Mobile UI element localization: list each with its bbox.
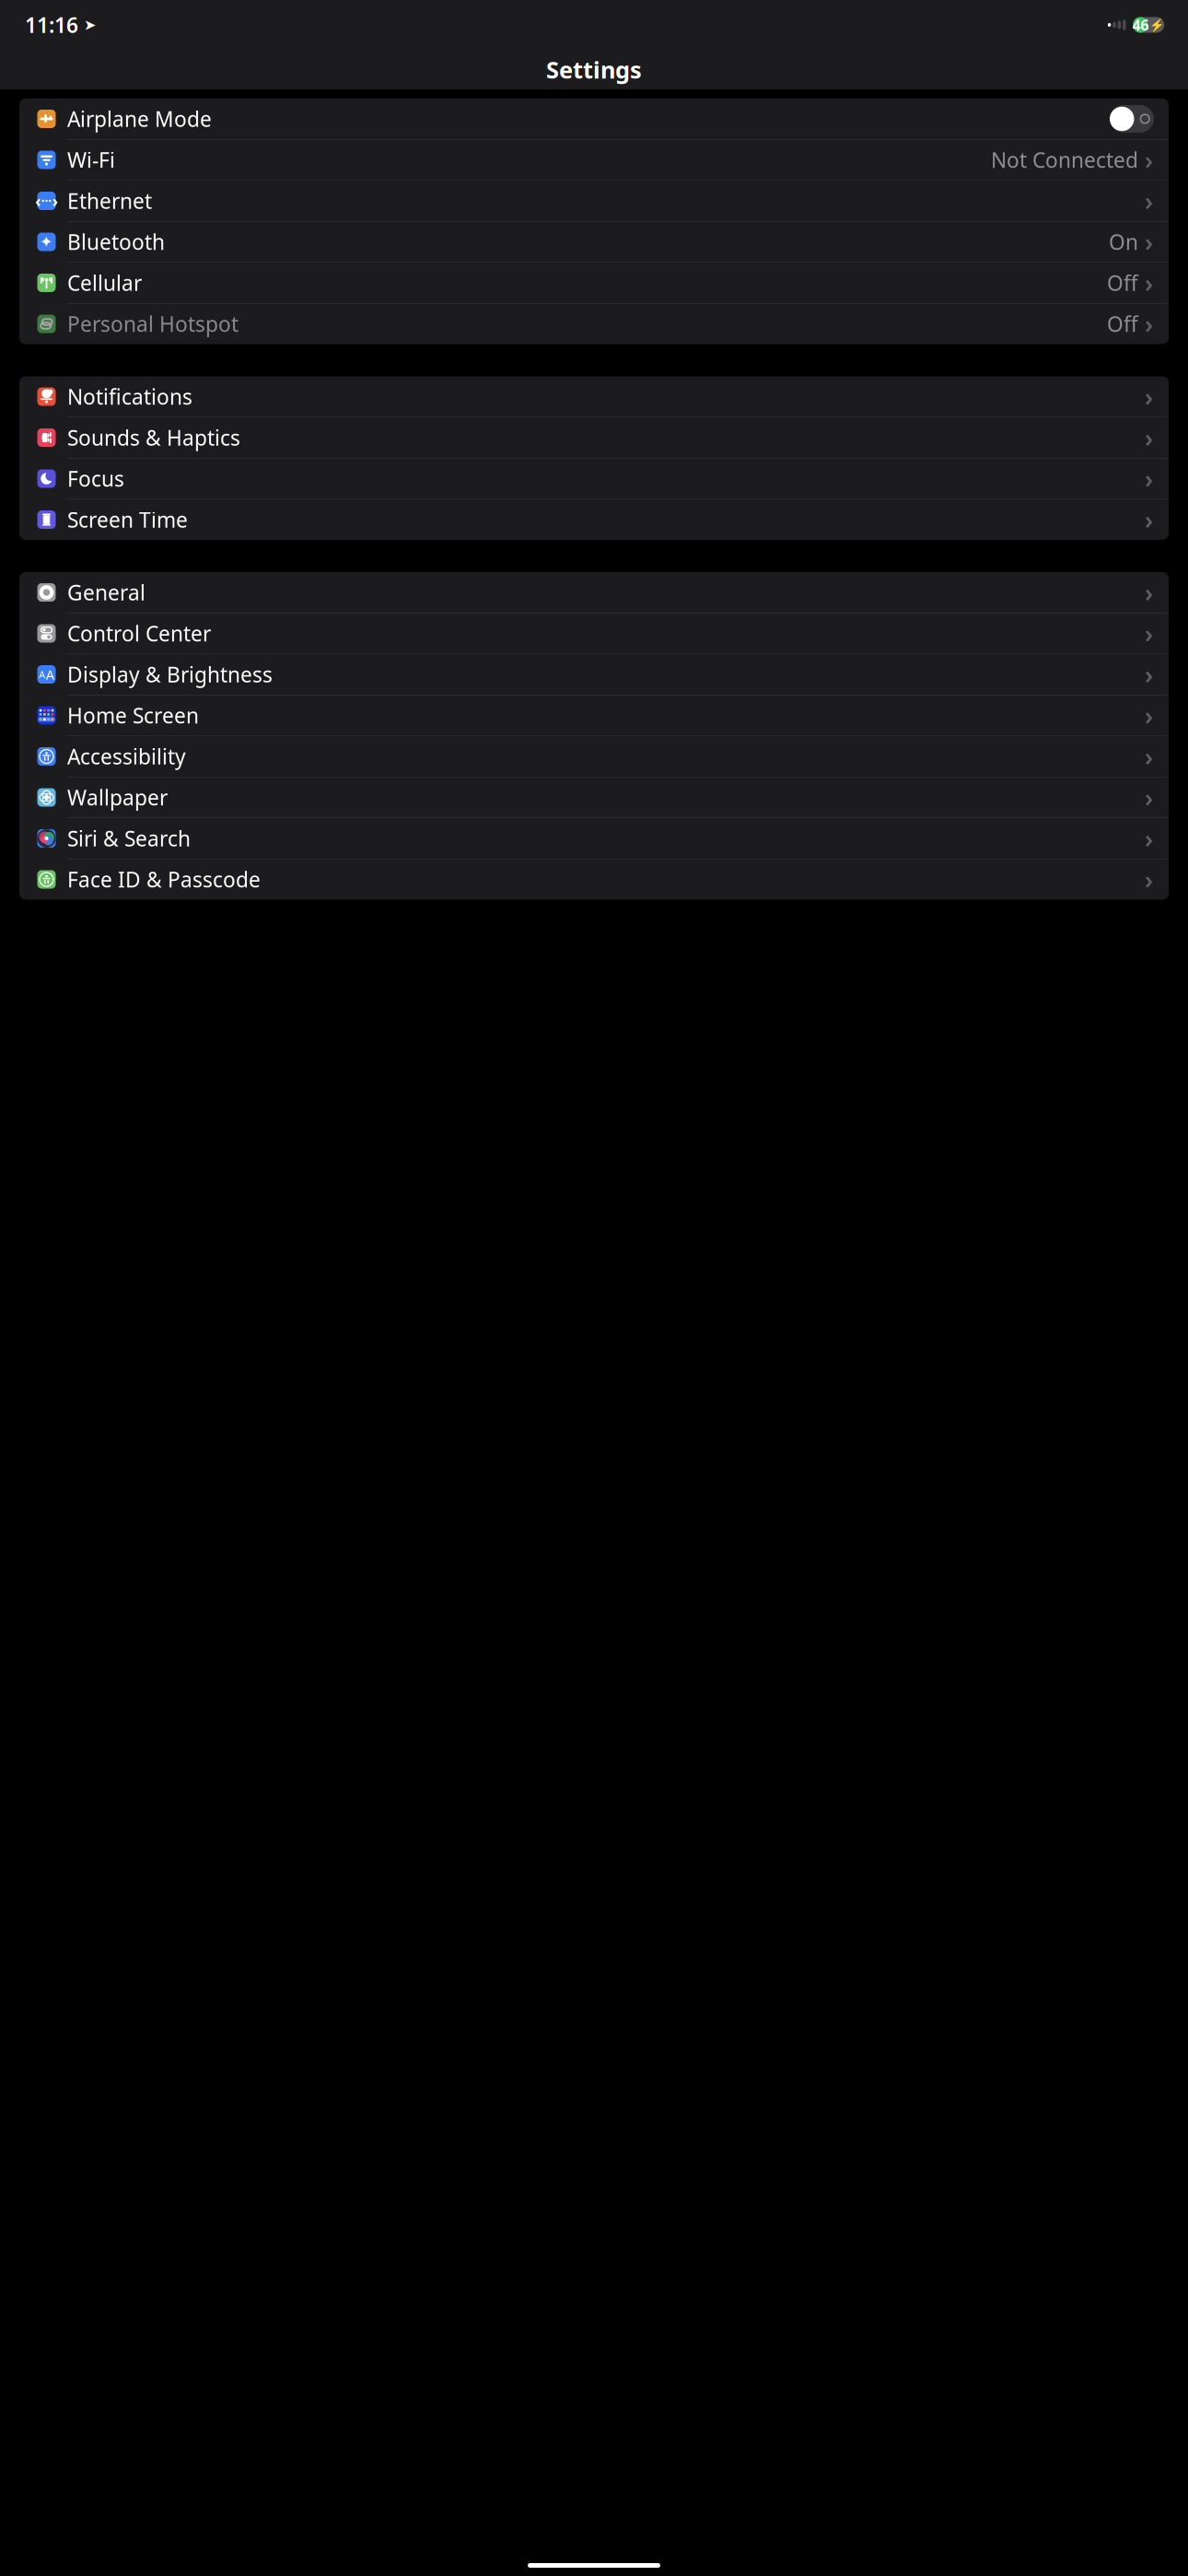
staticText: ›	[1145, 617, 1153, 650]
staticText: ›	[1145, 226, 1153, 258]
staticText: Off	[1107, 310, 1138, 338]
staticText: Not Connected	[991, 146, 1138, 174]
button[interactable]: A	[19, 654, 1169, 695]
button[interactable]: General	[19, 572, 1169, 613]
button[interactable]: Control Center	[19, 613, 1169, 654]
button[interactable]: Face ID & Passcode	[19, 859, 1169, 900]
staticText: ›	[1145, 658, 1153, 691]
button[interactable]: Sounds & Haptics	[19, 417, 1169, 458]
button[interactable]: Notifications	[19, 376, 1169, 417]
staticText: 46	[1132, 15, 1149, 35]
staticText: ›	[52, 190, 58, 211]
staticText: Sounds & Haptics	[67, 424, 240, 451]
staticText: Screen Time	[67, 506, 188, 533]
staticText: Siri & Search	[67, 824, 191, 852]
staticText: ›	[1145, 421, 1153, 454]
staticText: ›	[1145, 503, 1153, 536]
staticText: ›	[1145, 462, 1153, 495]
button[interactable]: Accessibility	[19, 736, 1169, 777]
staticText: ›	[1145, 267, 1153, 299]
staticText: ›	[1145, 699, 1153, 732]
staticText: 11:16	[25, 11, 78, 39]
staticText: Accessibility	[67, 742, 186, 770]
button[interactable]: Focus	[19, 458, 1169, 499]
staticText: Cellular	[67, 269, 142, 297]
staticText: A	[46, 665, 54, 683]
staticText: ›	[1145, 863, 1153, 896]
staticText: ›	[1145, 185, 1153, 217]
staticText: A	[39, 668, 45, 681]
staticText: ✦	[40, 233, 53, 251]
button[interactable]: Cellular	[19, 263, 1169, 304]
staticText: ›	[1145, 144, 1153, 176]
staticText: ›	[1145, 781, 1153, 814]
staticText: Airplane Mode	[67, 105, 212, 133]
staticText: Face ID & Passcode	[67, 865, 261, 893]
button[interactable]: ✦	[19, 222, 1169, 263]
staticText: ›	[1145, 576, 1153, 609]
staticText: Display & Brightness	[67, 660, 273, 688]
staticText: Personal Hotspot	[67, 310, 239, 338]
button[interactable]: Airplane Mode	[19, 99, 1169, 140]
button[interactable]: Wallpaper	[19, 777, 1169, 818]
button[interactable]: Siri & Search	[19, 818, 1169, 859]
staticText: ›	[1145, 822, 1153, 855]
button[interactable]: Personal Hotspot	[19, 304, 1169, 344]
button[interactable]: Wi-Fi	[19, 140, 1169, 181]
staticText: ›	[1145, 380, 1153, 413]
staticText: ‹	[35, 190, 41, 211]
staticText: Off	[1107, 269, 1138, 297]
staticText: Wallpaper	[67, 783, 168, 811]
button[interactable]: ‹	[19, 181, 1169, 222]
staticText: ⚡	[1149, 18, 1165, 32]
staticText: Ethernet	[67, 187, 152, 215]
staticText: ➤	[84, 16, 96, 33]
staticText: General	[67, 578, 146, 606]
staticText: Wi-Fi	[67, 146, 115, 174]
staticText: Settings	[546, 54, 642, 85]
staticText: Home Screen	[67, 701, 199, 729]
staticText: On	[1109, 228, 1138, 256]
staticText: Bluetooth	[67, 228, 165, 256]
button[interactable]: Home Screen	[19, 695, 1169, 736]
staticText: ›	[1145, 740, 1153, 773]
staticText: Focus	[67, 465, 124, 492]
staticText: Control Center	[67, 619, 211, 647]
staticText: Notifications	[67, 383, 192, 410]
staticText: ›	[1145, 308, 1153, 340]
button[interactable]: Screen Time	[19, 499, 1169, 540]
